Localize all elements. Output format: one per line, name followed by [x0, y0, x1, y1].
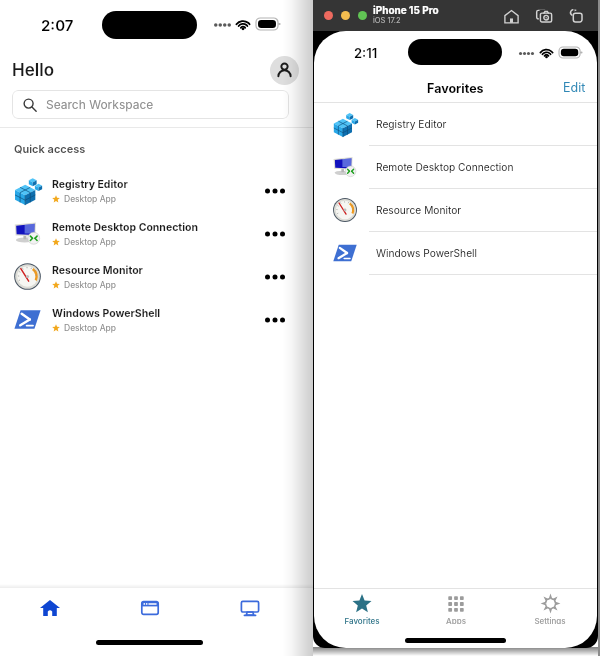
button[interactable]: More options	[254, 298, 296, 341]
button[interactable]: Home	[498, 3, 524, 29]
staticText: Windows PowerShell	[376, 247, 478, 259]
button[interactable]: Home	[0, 588, 100, 628]
staticText: Apps	[446, 616, 466, 624]
staticText: Desktop App	[64, 194, 116, 204]
staticText: Quick access	[14, 142, 86, 155]
button[interactable]: Registry Editor	[314, 103, 597, 146]
button[interactable]: Resource Monitor	[314, 189, 597, 232]
staticText: 2:07	[41, 16, 74, 34]
button[interactable]: Close	[324, 11, 333, 20]
button[interactable]: Windows PowerShell	[0, 298, 313, 341]
button[interactable]: Remote Desktop Connection	[0, 212, 313, 255]
button[interactable]: More options	[254, 212, 296, 255]
button[interactable]: Settings	[503, 589, 597, 624]
button[interactable]: Apps	[100, 588, 200, 628]
button[interactable]: Apps	[409, 589, 503, 624]
button[interactable]: Desktops	[200, 588, 300, 628]
button[interactable]: Maximize	[358, 11, 367, 20]
staticText: Desktop App	[64, 280, 116, 290]
button[interactable]: Minimize	[341, 11, 350, 20]
button[interactable]: More options	[254, 255, 296, 298]
button[interactable]: Search Workspace	[12, 90, 289, 119]
staticText: Settings	[534, 616, 566, 624]
button[interactable]: More options	[254, 169, 296, 212]
staticText: Desktop App	[64, 237, 116, 247]
staticText: iPhone 15 Pro	[373, 4, 439, 16]
staticText: Resource Monitor	[52, 264, 143, 277]
staticText: Search Workspace	[46, 97, 154, 112]
staticText: Registry Editor	[376, 118, 447, 130]
button[interactable]: Resource Monitor	[0, 255, 313, 298]
staticText: Edit	[563, 80, 586, 95]
staticText: iOS 17.2	[373, 16, 401, 25]
button[interactable]: Screenshot	[531, 3, 557, 29]
staticText: Windows PowerShell	[52, 307, 161, 320]
staticText: Registry Editor	[52, 178, 128, 191]
button[interactable]: Rotate	[564, 3, 590, 29]
staticText: Remote Desktop Connection	[52, 221, 199, 234]
button[interactable]: Favorites	[314, 589, 409, 624]
staticText: 2:11	[354, 45, 378, 61]
staticText: Favorites	[427, 81, 484, 96]
staticText: Desktop App	[64, 323, 116, 333]
button[interactable]: Remote Desktop Connection	[314, 146, 597, 189]
staticText: Hello	[12, 60, 54, 81]
staticText: Resource Monitor	[376, 204, 462, 216]
staticText: Remote Desktop Connection	[376, 161, 514, 173]
staticText: Favorites	[344, 616, 380, 624]
button[interactable]: Registry Editor	[0, 169, 313, 212]
button[interactable]: Account	[270, 56, 299, 85]
button[interactable]: Windows PowerShell	[314, 232, 597, 275]
button[interactable]: Edit	[563, 80, 586, 95]
